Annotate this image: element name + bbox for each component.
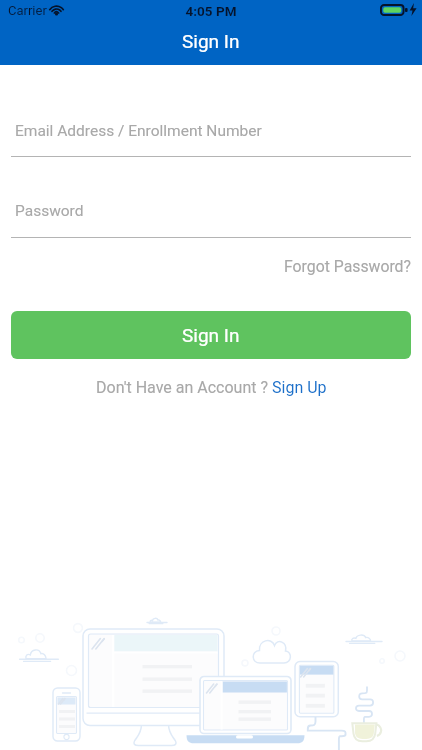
staticText: 4:05 PM bbox=[0, 3, 422, 19]
staticText: Carrier bbox=[8, 3, 47, 18]
staticText: Forgot Password? bbox=[284, 257, 411, 276]
staticText: Don't Have an Account ? bbox=[96, 378, 272, 397]
staticText: Sign Up bbox=[272, 378, 327, 397]
button[interactable]: Forgot Password? bbox=[0, 256, 422, 276]
staticText: Sign In bbox=[182, 30, 240, 52]
staticText: Sign In bbox=[182, 324, 240, 346]
staticText: Password bbox=[15, 202, 84, 220]
staticText: Email Address / Enrollment Number bbox=[15, 122, 262, 140]
button[interactable]: Sign In bbox=[11, 311, 411, 359]
button[interactable]: Sign Up bbox=[272, 378, 327, 397]
